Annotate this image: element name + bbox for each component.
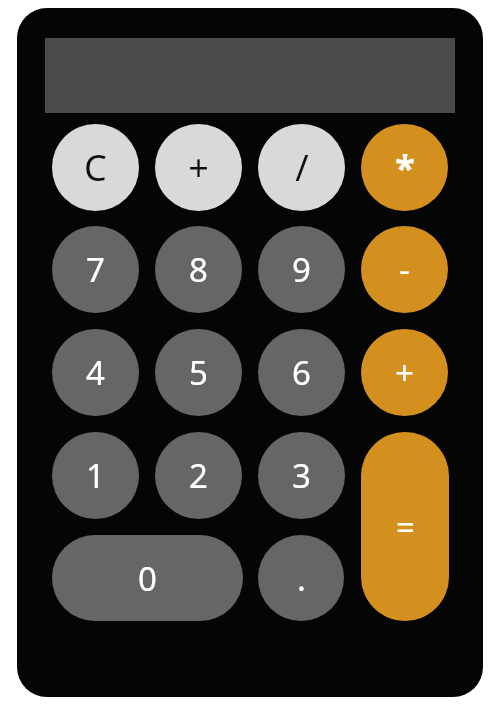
button[interactable]: . bbox=[258, 535, 344, 621]
button[interactable]: - bbox=[361, 226, 448, 313]
button[interactable]: C bbox=[52, 124, 139, 211]
button[interactable]: 0 bbox=[52, 535, 243, 621]
staticText: 3 bbox=[292, 453, 311, 498]
button[interactable]: 1 bbox=[52, 432, 139, 519]
staticText: * bbox=[395, 143, 415, 192]
staticText: 7 bbox=[86, 247, 105, 292]
staticText: + bbox=[188, 143, 209, 192]
button[interactable]: 2 bbox=[155, 432, 242, 519]
staticText: - bbox=[399, 247, 410, 292]
button[interactable]: 7 bbox=[52, 226, 139, 313]
button[interactable]: 3 bbox=[258, 432, 345, 519]
button[interactable]: 6 bbox=[258, 329, 345, 416]
staticText: 2 bbox=[189, 453, 208, 498]
staticText: = bbox=[396, 504, 415, 549]
button[interactable]: = bbox=[361, 432, 449, 621]
staticText: . bbox=[297, 556, 306, 601]
staticText: 8 bbox=[189, 247, 208, 292]
button[interactable]: 9 bbox=[258, 226, 345, 313]
staticText: 9 bbox=[292, 247, 311, 292]
button[interactable]: * bbox=[361, 124, 448, 211]
button[interactable]: 8 bbox=[155, 226, 242, 313]
button[interactable]: 4 bbox=[52, 329, 139, 416]
staticText: C bbox=[84, 143, 107, 192]
button[interactable]: / bbox=[258, 124, 345, 211]
staticText: 1 bbox=[86, 453, 105, 498]
staticText: 0 bbox=[138, 556, 157, 601]
staticText: 4 bbox=[86, 350, 105, 395]
staticText: + bbox=[395, 350, 414, 395]
staticText: 5 bbox=[189, 350, 208, 395]
button[interactable]: + bbox=[361, 329, 448, 416]
staticText: 6 bbox=[292, 350, 311, 395]
button[interactable]: + bbox=[155, 124, 242, 211]
button[interactable]: 5 bbox=[155, 329, 242, 416]
staticText: / bbox=[295, 143, 309, 192]
